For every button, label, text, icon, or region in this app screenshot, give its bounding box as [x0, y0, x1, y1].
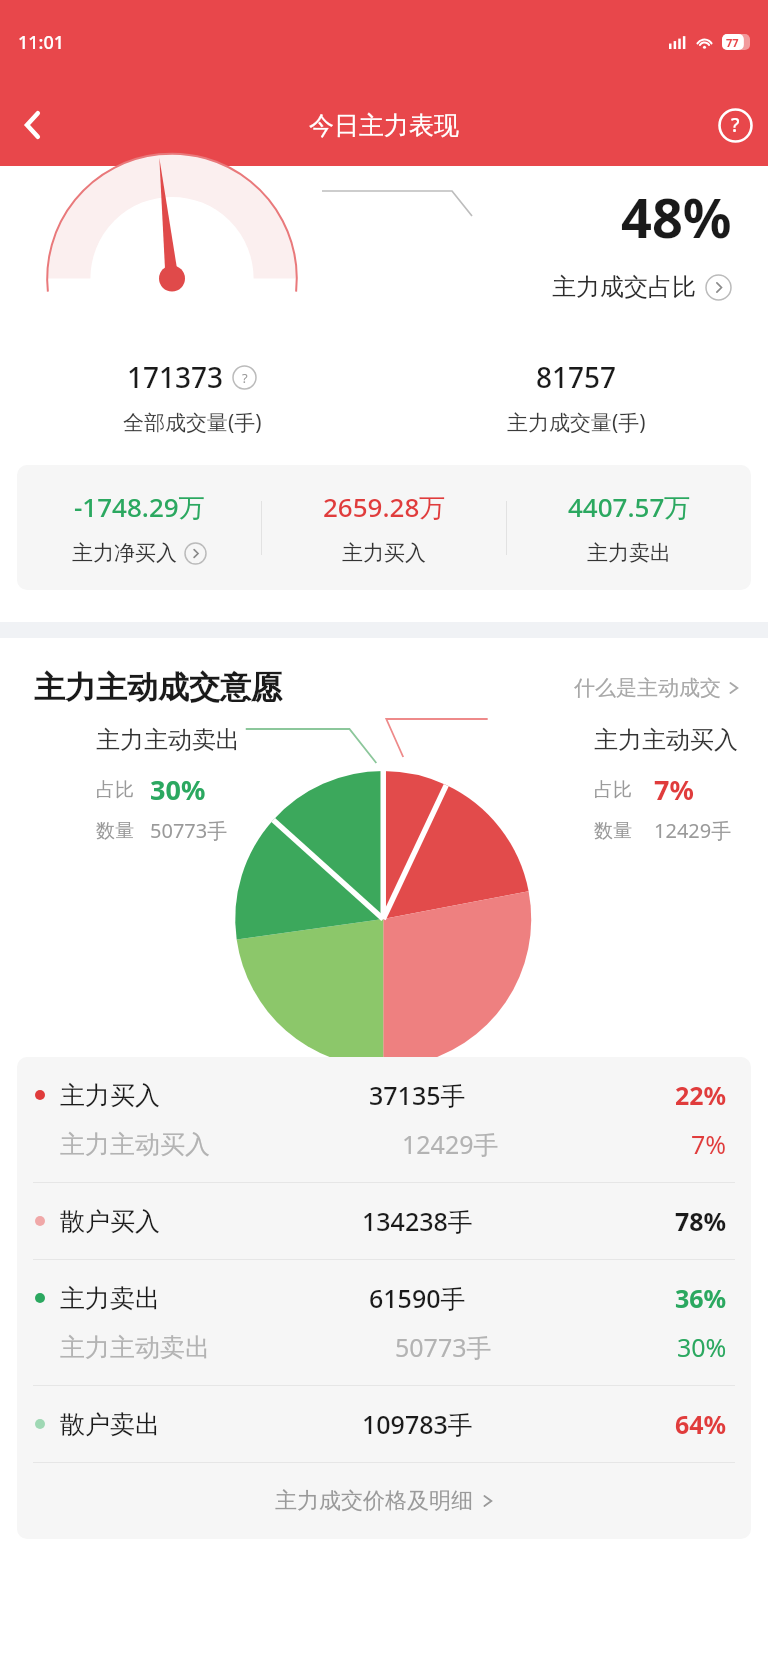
staticText: 主力成交价格及明细 [275, 1487, 473, 1515]
staticText: 数量 [96, 819, 134, 843]
staticText: 主力成交占比 [552, 272, 696, 302]
staticText: 77 [726, 35, 739, 50]
button[interactable]: Back [0, 92, 66, 158]
staticText: 7% [691, 1127, 727, 1161]
staticText: 主力主动成交意愿 [34, 668, 282, 707]
staticText: 主力主动卖出 [60, 1332, 210, 1363]
staticText: 主力净买入 [72, 540, 177, 566]
staticText: ? [242, 369, 248, 387]
staticText: 占比 [594, 778, 632, 802]
staticText: 48% [621, 180, 732, 254]
staticText: 4407.57万 [568, 489, 691, 525]
staticText: 50773手 [150, 817, 228, 844]
staticText: 30% [677, 1330, 727, 1364]
staticText: 61590手 [369, 1281, 466, 1315]
staticText: 36% [675, 1281, 727, 1315]
button[interactable]: 什么是主动成交 [568, 669, 746, 707]
button[interactable]: 主力成交占比 [552, 272, 732, 302]
staticText: 12429手 [654, 817, 732, 844]
staticText: 2659.28万 [323, 489, 446, 525]
staticText: 109783手 [362, 1407, 473, 1441]
staticText: 主力成交量(手) [507, 408, 646, 437]
staticText: 今日主力表现 [309, 110, 459, 141]
staticText: ? [731, 112, 740, 138]
button[interactable]: -1748.29万 [17, 489, 261, 566]
button[interactable]: 散户卖出 [17, 1386, 751, 1462]
staticText: 30% [150, 771, 206, 808]
staticText: 数量 [594, 819, 632, 843]
staticText: 散户卖出 [60, 1409, 160, 1440]
staticText: 主力卖出 [587, 540, 671, 566]
staticText: 50773手 [395, 1330, 492, 1364]
staticText: 12429手 [402, 1127, 499, 1161]
staticText: 11:01 [18, 30, 65, 55]
staticText: 37135手 [369, 1078, 466, 1112]
staticText: 占比 [96, 778, 134, 802]
staticText: 散户买入 [60, 1206, 160, 1237]
button[interactable]: 主力成交价格及明细 [17, 1463, 751, 1539]
staticText: 主力买入 [60, 1080, 160, 1111]
staticText: 主力主动买入 [60, 1129, 210, 1160]
button[interactable]: Info [232, 365, 257, 390]
staticText: 主力买入 [342, 540, 426, 566]
button[interactable]: 散户买入 [17, 1183, 751, 1259]
staticText: -1748.29万 [74, 489, 205, 525]
staticText: 22% [675, 1078, 727, 1112]
staticText: 171373 [127, 358, 224, 396]
staticText: 主力卖出 [60, 1283, 160, 1314]
button[interactable]: 主力买入 [17, 1057, 751, 1182]
staticText: 主力主动买入 [594, 725, 738, 755]
staticText: 什么是主动成交 [574, 675, 721, 701]
staticText: 全部成交量(手) [123, 408, 262, 437]
staticText: 7% [654, 771, 694, 808]
button[interactable]: Help [702, 92, 768, 158]
staticText: 主力主动卖出 [96, 725, 240, 755]
button[interactable]: 主力卖出 [17, 1260, 751, 1385]
staticText: 78% [675, 1204, 727, 1238]
staticText: 64% [675, 1407, 727, 1441]
staticText: 81757 [536, 358, 617, 396]
staticText: 134238手 [362, 1204, 473, 1238]
